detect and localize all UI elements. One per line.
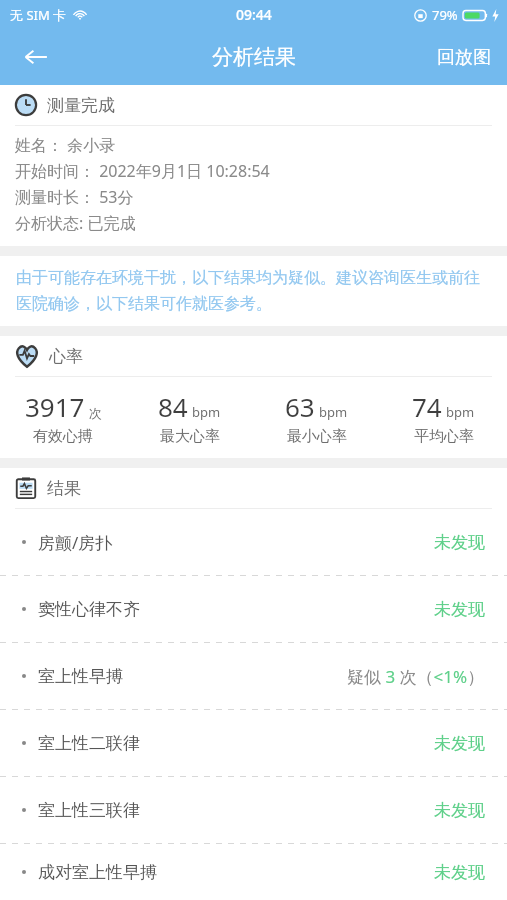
- staticText: 测量时长： 53分: [15, 186, 134, 208]
- staticText: 3917: [25, 389, 85, 424]
- staticText: 疑似 3 次（<1%）: [347, 665, 485, 688]
- button[interactable]: 回放图: [421, 29, 507, 85]
- staticText: 74: [412, 389, 442, 424]
- staticText: bpm: [192, 403, 221, 421]
- staticText: 次: [89, 405, 102, 421]
- staticText: 无 SIM 卡: [10, 6, 67, 24]
- staticText: bpm: [446, 403, 475, 421]
- staticText: 姓名： 余小录: [15, 134, 116, 156]
- staticText: 84: [158, 389, 188, 424]
- staticText: 未发现: [434, 733, 485, 754]
- staticText: 房颤/房扑: [38, 531, 113, 554]
- staticText: 窦性心律不齐: [38, 599, 140, 620]
- staticText: 室上性二联律: [38, 733, 140, 754]
- button[interactable]: Back: [8, 29, 64, 85]
- staticText: bpm: [319, 403, 348, 421]
- button[interactable]: 室上性三联律: [0, 777, 507, 843]
- button[interactable]: 室上性二联律: [0, 710, 507, 776]
- button[interactable]: 窦性心律不齐: [0, 576, 507, 642]
- staticText: 分析状态: 已完成: [15, 212, 136, 234]
- button[interactable]: 房颤/房扑: [0, 509, 507, 575]
- staticText: 开始时间： 2022年9月1日 10:28:54: [15, 160, 270, 182]
- staticText: 最小心率: [287, 427, 347, 446]
- staticText: 79%: [432, 6, 458, 24]
- staticText: 09:44: [236, 5, 272, 24]
- staticText: 63: [285, 389, 315, 424]
- button[interactable]: 成对室上性早搏: [0, 844, 507, 900]
- staticText: 有效心搏: [33, 427, 93, 446]
- staticText: 未发现: [434, 599, 485, 620]
- staticText: 由于可能存在环境干扰，以下结果均为疑似。建议咨询医生或前往医院确诊，以下结果可作…: [16, 268, 493, 314]
- staticText: 平均心率: [414, 427, 474, 446]
- staticText: 结果: [47, 478, 81, 499]
- staticText: 未发现: [434, 862, 485, 883]
- staticText: 成对室上性早搏: [38, 862, 157, 883]
- staticText: 未发现: [434, 800, 485, 821]
- staticText: 未发现: [434, 532, 485, 553]
- staticText: 心率: [49, 346, 83, 367]
- staticText: 测量完成: [47, 95, 115, 116]
- button[interactable]: 室上性早搏: [0, 643, 507, 709]
- staticText: 回放图: [437, 46, 491, 69]
- staticText: 室上性三联律: [38, 800, 140, 821]
- staticText: 分析结果: [212, 44, 296, 70]
- staticText: 室上性早搏: [38, 666, 123, 687]
- staticText: 最大心率: [160, 427, 220, 446]
